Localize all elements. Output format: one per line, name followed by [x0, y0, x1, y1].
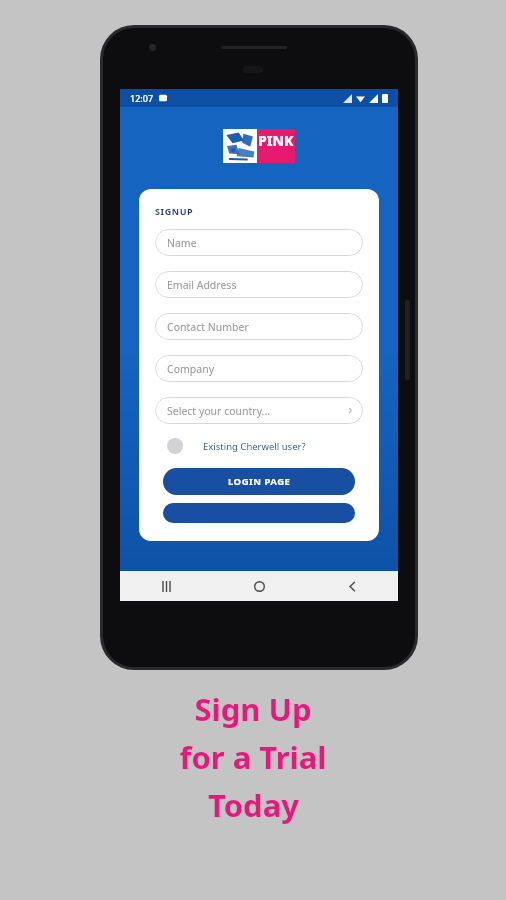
- button[interactable]: Home: [243, 571, 275, 601]
- button[interactable]: Contact Number: [155, 313, 363, 340]
- button[interactable]: Existing Cherwell user?: [155, 438, 363, 454]
- staticText: Contact Number: [167, 320, 249, 334]
- staticText: Sign Up: [194, 688, 312, 730]
- staticText: Existing Cherwell user?: [203, 440, 306, 453]
- staticText: Today: [208, 784, 299, 826]
- button[interactable]: Back: [336, 571, 368, 601]
- staticText: for a Trial: [179, 736, 327, 778]
- staticText: Select your country...: [167, 404, 271, 418]
- staticText: LOGIN PAGE: [228, 475, 291, 488]
- button[interactable]: Recent apps: [150, 571, 182, 601]
- button[interactable]: Name: [155, 229, 363, 256]
- staticText: Email Address: [167, 278, 237, 292]
- button[interactable]: Email Address: [155, 271, 363, 298]
- button[interactable]: LOGIN PAGE: [163, 468, 355, 495]
- staticText: Company: [167, 362, 214, 376]
- button[interactable]: Company: [155, 355, 363, 382]
- button[interactable]: [163, 503, 355, 523]
- button[interactable]: Select your country...: [155, 397, 363, 424]
- staticText: 12:07: [130, 92, 154, 104]
- staticText: Name: [167, 236, 197, 250]
- staticText: PINK: [258, 131, 294, 150]
- staticText: SIGNUP: [155, 205, 194, 217]
